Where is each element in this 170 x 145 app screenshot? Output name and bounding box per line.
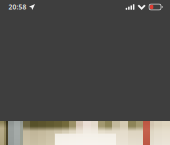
staticText: 20:58 — [8, 3, 26, 11]
